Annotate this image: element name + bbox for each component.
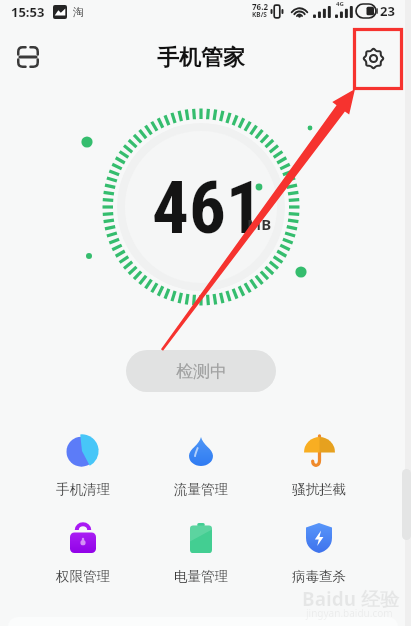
button[interactable]: 权限管理 — [23, 521, 142, 585]
staticText: 4G — [336, 0, 344, 8]
staticText: 手机管家 — [157, 44, 245, 72]
button[interactable]: 病毒查杀 — [260, 521, 378, 585]
staticText: 23 — [380, 2, 395, 20]
staticText: 76.2 — [252, 1, 268, 12]
staticText: Baidu 经验 — [302, 586, 399, 612]
staticText: 手机清理 — [56, 481, 110, 498]
staticText: 15:53 — [11, 3, 45, 21]
staticText: MB — [247, 214, 272, 234]
button[interactable]: Scan code — [8, 37, 48, 77]
staticText: 骚扰拦截 — [292, 481, 346, 498]
staticText: 流量管理 — [174, 481, 228, 498]
staticText: 权限管理 — [56, 568, 110, 585]
button[interactable]: 检测中 — [126, 350, 276, 392]
button[interactable]: Settings — [353, 38, 393, 78]
staticText: jingyan.baidu.com — [306, 606, 393, 620]
button[interactable]: 流量管理 — [142, 434, 260, 498]
button[interactable]: 电量管理 — [142, 521, 260, 585]
staticText: KB/S — [252, 10, 267, 19]
staticText: 淘 — [73, 5, 84, 19]
staticText: 461 — [152, 165, 263, 251]
staticText: 电量管理 — [174, 568, 228, 585]
staticText: 病毒查杀 — [292, 568, 346, 585]
staticText: 检测中 — [176, 361, 227, 382]
button[interactable]: 手机清理 — [23, 434, 142, 498]
button[interactable]: 骚扰拦截 — [260, 434, 378, 498]
